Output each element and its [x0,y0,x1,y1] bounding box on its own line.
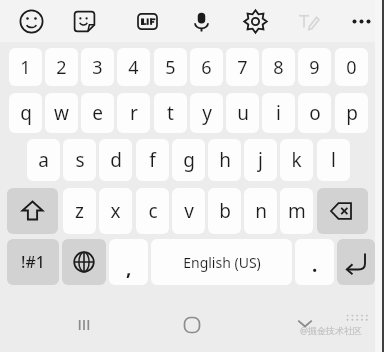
button[interactable]: k [280,139,313,181]
button[interactable]: s [63,139,96,181]
button[interactable]: a [27,139,60,181]
staticText: 5 [165,55,176,80]
staticText: b [219,198,231,224]
button[interactable]: 6 [190,48,223,86]
staticText: 7 [237,55,248,80]
staticText: k [291,147,302,173]
staticText: 6 [201,55,212,80]
button[interactable]: Hide keyboard [288,306,322,340]
staticText: y [202,100,212,126]
staticText: p [346,100,358,126]
staticText: @掘金技术社区 [300,324,363,336]
staticText: w [54,100,69,126]
button[interactable]: p [335,93,368,133]
button[interactable]: More options [342,2,380,40]
button[interactable]: 2 [45,48,78,86]
staticText: z [75,198,84,224]
button[interactable]: 8 [262,48,295,86]
staticText: 3 [92,55,103,80]
button[interactable]: u [226,93,259,133]
button[interactable]: w [45,93,78,133]
button[interactable]: o [298,93,331,133]
button[interactable]: 9 [298,48,331,86]
staticText: 4 [128,55,139,80]
button[interactable]: 0 [335,48,368,86]
button[interactable]: , [109,239,148,285]
staticText: , [126,255,132,281]
staticText: n [255,198,267,224]
button[interactable]: g [172,139,205,181]
button[interactable]: y [190,93,223,133]
button[interactable]: Settings [236,2,274,40]
staticText: q [20,100,32,126]
staticText: . [312,252,318,278]
button[interactable]: Stickers [65,2,103,40]
button[interactable]: x [99,188,132,234]
button[interactable]: Voice input [182,2,220,40]
button[interactable]: Home [173,306,211,344]
staticText: o [309,100,321,126]
staticText: 8 [273,55,284,80]
button[interactable]: . [295,239,334,285]
button[interactable]: e [81,93,114,133]
button[interactable]: English (US) [151,239,292,285]
staticText: d [110,147,122,173]
staticText: j [258,147,263,173]
button[interactable]: v [172,188,205,234]
button[interactable]: Change language [62,239,106,285]
staticText: u [237,100,249,126]
staticText: e [92,100,103,126]
staticText: x [110,198,121,224]
button[interactable]: Recent apps [65,306,103,344]
staticText: 2 [56,55,67,80]
staticText: 9 [309,55,320,80]
button[interactable]: t [154,93,187,133]
staticText: 0 [346,55,357,80]
button[interactable]: i [262,93,295,133]
staticText: r [130,100,138,126]
button[interactable]: 5 [154,48,187,86]
button[interactable]: j [244,139,277,181]
staticText: l [331,147,336,173]
button[interactable]: 7 [226,48,259,86]
button[interactable]: q [9,93,42,133]
staticText: h [219,147,231,173]
button[interactable]: Handwriting [289,2,327,40]
button[interactable]: m [280,188,313,234]
staticText: t [167,100,174,126]
staticText: g [183,147,195,173]
staticText: m [288,198,306,224]
staticText: c [148,198,158,224]
button[interactable]: z [63,188,96,234]
staticText: !#1 [21,251,45,273]
button[interactable]: r [117,93,150,133]
button[interactable]: !#1 [7,239,59,285]
button[interactable]: Emoji [12,2,50,40]
button[interactable]: l [317,139,350,181]
staticText: f [149,147,156,173]
staticText: i [276,100,281,126]
staticText: s [75,147,85,173]
staticText: v [184,198,194,224]
button[interactable]: 1 [9,48,42,86]
button[interactable]: Shift [7,188,58,234]
button[interactable]: d [99,139,132,181]
button[interactable]: b [208,188,241,234]
button[interactable]: GIF [128,2,166,40]
staticText: English (US) [183,253,261,272]
button[interactable]: 3 [81,48,114,86]
staticText: 1 [20,55,31,80]
button[interactable]: 4 [117,48,150,86]
button[interactable]: f [136,139,169,181]
button[interactable]: c [136,188,169,234]
button[interactable]: n [244,188,277,234]
button[interactable]: Enter [337,239,375,285]
staticText: a [38,147,49,173]
button[interactable]: h [208,139,241,181]
button[interactable]: Backspace [317,188,368,234]
